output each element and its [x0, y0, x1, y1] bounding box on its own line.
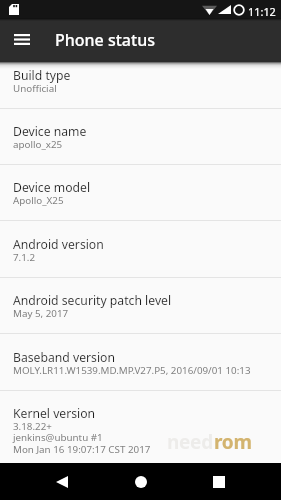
staticText: Apollo_X25	[13, 194, 64, 207]
button[interactable]: Android version	[0, 222, 281, 278]
staticText: rom	[214, 429, 252, 455]
staticText: Android security patch level	[13, 292, 172, 309]
staticText: Build type	[13, 67, 71, 84]
staticText: jenkins@ubuntu #1	[13, 431, 103, 444]
staticText: 11:12	[248, 4, 276, 19]
staticText: Device name	[13, 123, 87, 140]
button[interactable]: Open navigation drawer	[6, 18, 38, 60]
button[interactable]: Recent apps	[196, 463, 242, 500]
button[interactable]: Android security patch level	[0, 278, 281, 334]
staticText: Android version	[13, 236, 104, 253]
staticText: May 5, 2017	[13, 307, 69, 320]
staticText: 7.1.2	[13, 251, 36, 264]
staticText: Phone status	[55, 29, 155, 51]
button[interactable]: Kernel version	[0, 391, 281, 481]
button[interactable]: Device model	[0, 165, 281, 221]
button[interactable]: Device name	[0, 109, 281, 165]
staticText: Kernel version	[13, 405, 96, 422]
button[interactable]: Baseband version	[0, 335, 281, 391]
staticText: 3.18.22+	[13, 420, 52, 433]
staticText: MOLY.LR11.W1539.MD.MP.V27.P5, 2016/09/01…	[13, 364, 251, 377]
button[interactable]: Back	[39, 463, 85, 500]
button[interactable]: Home	[118, 463, 164, 500]
staticText: Device model	[13, 179, 91, 196]
staticText: apollo_x25	[13, 138, 63, 151]
staticText: Baseband version	[13, 349, 115, 366]
staticText: need	[167, 429, 213, 455]
button[interactable]: Build type	[0, 53, 281, 109]
staticText: Unofficial	[13, 82, 57, 95]
staticText: Mon Jan 16 19:07:17 CST 2017	[13, 443, 151, 456]
